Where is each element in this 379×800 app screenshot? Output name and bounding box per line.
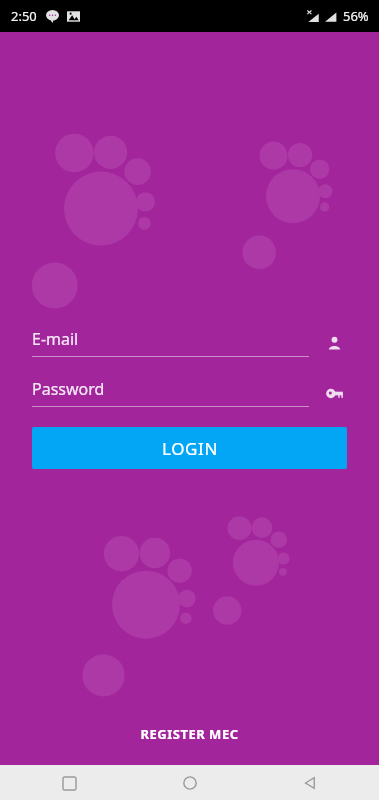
button[interactable]: Password key: [321, 380, 347, 406]
button[interactable]: REGISTER MEC: [124, 719, 255, 749]
staticText: E-mail: [32, 328, 79, 350]
button[interactable]: E-mail: [32, 328, 309, 357]
staticText: REGISTER MEC: [140, 725, 239, 743]
button[interactable]: Password: [32, 378, 309, 407]
button[interactable]: Recent apps: [54, 768, 84, 798]
staticText: Password: [32, 378, 105, 400]
button[interactable]: Account: [321, 330, 347, 356]
staticText: 2:50: [11, 7, 37, 25]
button[interactable]: Home: [175, 768, 205, 798]
button[interactable]: Back: [295, 768, 325, 798]
staticText: 56%: [343, 7, 369, 25]
button[interactable]: LOGIN: [32, 427, 347, 469]
staticText: LOGIN: [162, 437, 218, 460]
